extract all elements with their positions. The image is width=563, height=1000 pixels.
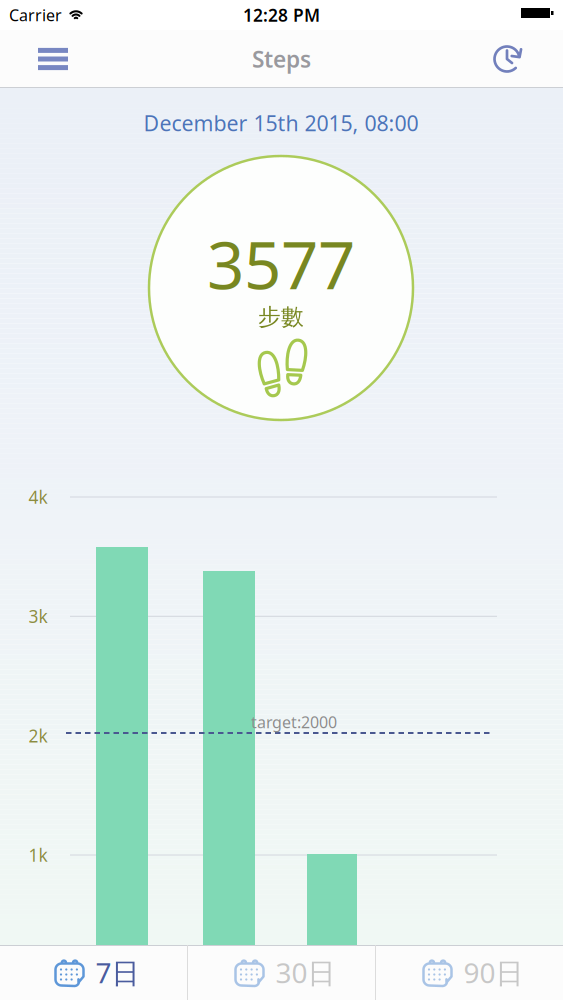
button[interactable] [0, 33, 68, 85]
button[interactable]: 7日 [0, 945, 187, 1000]
staticText: 1k [28, 843, 47, 866]
staticText: 步數 [258, 303, 304, 331]
staticText: 4k [28, 485, 47, 508]
staticText: 3k [28, 605, 47, 628]
button[interactable] [490, 31, 563, 87]
staticText: 90日 [463, 954, 523, 991]
staticText: 3577 [207, 221, 355, 307]
button[interactable]: 30日 [188, 945, 375, 1000]
staticText: 2k [28, 724, 47, 747]
staticText: 7日 [95, 954, 139, 991]
staticText: Carrier [9, 4, 62, 26]
button[interactable]: 90日 [376, 945, 563, 1000]
staticText: Steps [252, 44, 311, 74]
staticText: December 15th 2015, 08:00 [143, 109, 418, 137]
staticText: 12:28 PM [243, 3, 320, 26]
staticText: target:2000 [251, 711, 337, 733]
staticText: 30日 [275, 954, 335, 991]
